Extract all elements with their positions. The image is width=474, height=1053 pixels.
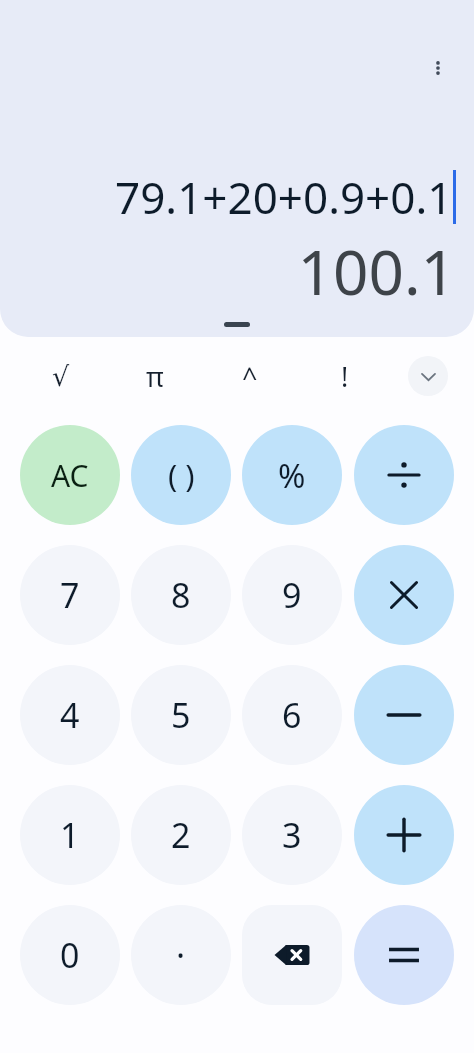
button[interactable]: Subtract bbox=[354, 665, 454, 765]
button[interactable]: Divide bbox=[354, 425, 454, 525]
button[interactable]: Equals bbox=[354, 905, 454, 1005]
button[interactable]: 4 bbox=[20, 665, 120, 765]
button[interactable]: 2 bbox=[131, 785, 231, 885]
staticText: 3 bbox=[282, 812, 302, 858]
staticText: · bbox=[176, 932, 186, 978]
button[interactable]: 0 bbox=[20, 905, 120, 1005]
button[interactable]: π bbox=[108, 337, 202, 415]
staticText: 100.1 bbox=[18, 229, 456, 313]
button[interactable]: Multiply bbox=[354, 545, 454, 645]
button[interactable]: 1 bbox=[20, 785, 120, 885]
staticText: √ bbox=[52, 361, 70, 392]
staticText: 5 bbox=[171, 692, 191, 738]
button[interactable]: ^ bbox=[202, 337, 297, 415]
staticText: 1 bbox=[60, 812, 80, 858]
staticText: 4 bbox=[60, 692, 80, 738]
staticText: 2 bbox=[171, 812, 191, 858]
staticText: π bbox=[146, 358, 164, 395]
staticText: ^ bbox=[242, 358, 258, 395]
button[interactable]: AC bbox=[20, 425, 120, 525]
staticText: 0 bbox=[60, 932, 80, 978]
button[interactable]: ( ) bbox=[131, 425, 231, 525]
button[interactable]: 7 bbox=[20, 545, 120, 645]
button[interactable]: Expand bbox=[408, 356, 448, 396]
button[interactable]: · bbox=[131, 905, 231, 1005]
button[interactable]: 3 bbox=[242, 785, 342, 885]
button[interactable]: ! bbox=[297, 337, 392, 415]
staticText: % bbox=[278, 453, 306, 498]
button[interactable]: √ bbox=[14, 337, 108, 415]
button[interactable]: 9 bbox=[242, 545, 342, 645]
staticText: 9 bbox=[282, 572, 302, 618]
button[interactable]: 6 bbox=[242, 665, 342, 765]
staticText: AC bbox=[51, 455, 89, 496]
button[interactable]: Add bbox=[354, 785, 454, 885]
button[interactable]: 8 bbox=[131, 545, 231, 645]
staticText: 8 bbox=[171, 572, 191, 618]
staticText: 6 bbox=[282, 692, 302, 738]
button[interactable]: Backspace bbox=[242, 905, 342, 1005]
button[interactable]: More options bbox=[414, 44, 462, 92]
staticText: ( ) bbox=[168, 454, 195, 496]
staticText: ! bbox=[341, 358, 349, 395]
staticText: 79.1+20+0.9+0.1 bbox=[115, 167, 453, 227]
button[interactable]: % bbox=[242, 425, 342, 525]
staticText: 7 bbox=[60, 572, 80, 618]
button[interactable]: 5 bbox=[131, 665, 231, 765]
